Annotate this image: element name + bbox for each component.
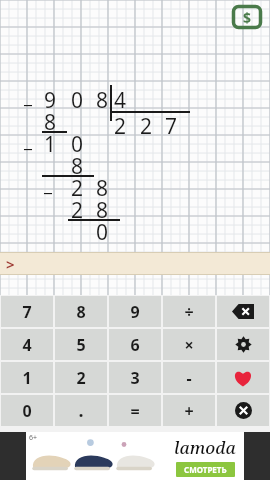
button[interactable]: ÷ bbox=[163, 296, 215, 327]
staticText: 0 bbox=[71, 86, 84, 115]
button[interactable]: Settings bbox=[217, 329, 269, 360]
staticText: 8 bbox=[96, 196, 109, 225]
button[interactable]: 8 bbox=[55, 296, 107, 327]
staticText: 2 bbox=[114, 112, 127, 141]
staticText: 0 bbox=[71, 130, 84, 159]
button[interactable]: 9 bbox=[109, 296, 161, 327]
staticText: 8 bbox=[96, 174, 109, 203]
staticText: 0 bbox=[96, 218, 109, 247]
staticText: 6+ bbox=[29, 433, 38, 443]
staticText: 4 bbox=[22, 334, 32, 356]
staticText: × bbox=[184, 334, 194, 356]
button[interactable]: 7 bbox=[1, 296, 53, 327]
staticText: - bbox=[186, 367, 192, 389]
staticText: _ bbox=[44, 172, 52, 197]
staticText: 7 bbox=[22, 301, 32, 323]
staticText: = bbox=[130, 400, 140, 422]
staticText: $ bbox=[243, 8, 252, 27]
button[interactable]: Advertisement bbox=[0, 432, 270, 480]
button[interactable]: > bbox=[0, 252, 270, 275]
staticText: 4 bbox=[114, 86, 127, 115]
button[interactable]: 2 bbox=[55, 362, 107, 393]
button[interactable]: 4 bbox=[1, 329, 53, 360]
staticText: 0 bbox=[22, 400, 32, 422]
staticText: _ bbox=[24, 128, 32, 153]
button[interactable]: Backspace bbox=[217, 296, 269, 327]
staticText: 2 bbox=[76, 367, 86, 389]
button[interactable]: Close bbox=[217, 395, 269, 426]
button[interactable]: × bbox=[163, 329, 215, 360]
staticText: _ bbox=[24, 84, 32, 109]
staticText: 3 bbox=[130, 367, 140, 389]
button[interactable]: Favorites bbox=[217, 362, 269, 393]
button[interactable]: 6 bbox=[109, 329, 161, 360]
staticText: 8 bbox=[76, 301, 86, 323]
staticText: 7 bbox=[165, 112, 178, 141]
staticText: 1 bbox=[44, 130, 57, 159]
button[interactable]: . bbox=[55, 395, 107, 426]
button[interactable]: 1 bbox=[1, 362, 53, 393]
staticText: 9 bbox=[130, 301, 140, 323]
staticText: 1 bbox=[22, 367, 32, 389]
button[interactable]: 5 bbox=[55, 329, 107, 360]
staticText: 5 bbox=[76, 334, 86, 356]
staticText: 8 bbox=[44, 108, 57, 137]
button[interactable]: - bbox=[163, 362, 215, 393]
staticText: СМОТРЕТЬ bbox=[184, 464, 227, 475]
staticText: 2 bbox=[71, 196, 84, 225]
staticText: 9 bbox=[44, 86, 57, 115]
button[interactable]: + bbox=[163, 395, 215, 426]
staticText: 2 bbox=[71, 174, 84, 203]
staticText: 8 bbox=[71, 152, 84, 181]
button[interactable]: Buy / Remove ads bbox=[232, 5, 262, 29]
button[interactable]: = bbox=[109, 395, 161, 426]
staticText: lamoda bbox=[174, 436, 236, 459]
staticText: + bbox=[184, 400, 194, 422]
staticText: 6 bbox=[130, 334, 140, 356]
button[interactable]: 3 bbox=[109, 362, 161, 393]
staticText: . bbox=[78, 398, 84, 423]
staticText: 8 bbox=[96, 86, 109, 115]
button[interactable]: 0 bbox=[1, 395, 53, 426]
staticText: 2 bbox=[140, 112, 153, 141]
staticText: ÷ bbox=[184, 301, 194, 323]
staticText: > bbox=[6, 254, 15, 274]
